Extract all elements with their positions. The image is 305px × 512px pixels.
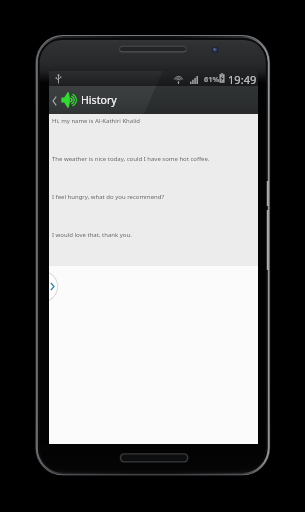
button[interactable]: Navigate up (49, 87, 60, 114)
button[interactable]: I would love that, thank you. (49, 228, 258, 266)
button[interactable]: The weather is nice today, could I have … (49, 152, 258, 190)
button[interactable]: Navigate up (49, 86, 258, 114)
staticText: The weather is nice today, could I have … (52, 155, 210, 163)
button[interactable]: Hi, my name is Al-Kathiri Khalid (49, 114, 258, 152)
button[interactable]: I feel hungry, what do you recommend? (49, 190, 258, 228)
staticText: History (81, 93, 117, 107)
staticText: Hi, my name is Al-Kathiri Khalid (52, 117, 140, 125)
button[interactable]: Open navigation drawer (49, 272, 57, 301)
staticText: I would love that, thank you. (52, 231, 132, 239)
staticText: 61% (204, 74, 220, 84)
staticText: 19:49 (228, 72, 257, 87)
staticText: I feel hungry, what do you recommend? (52, 193, 165, 201)
